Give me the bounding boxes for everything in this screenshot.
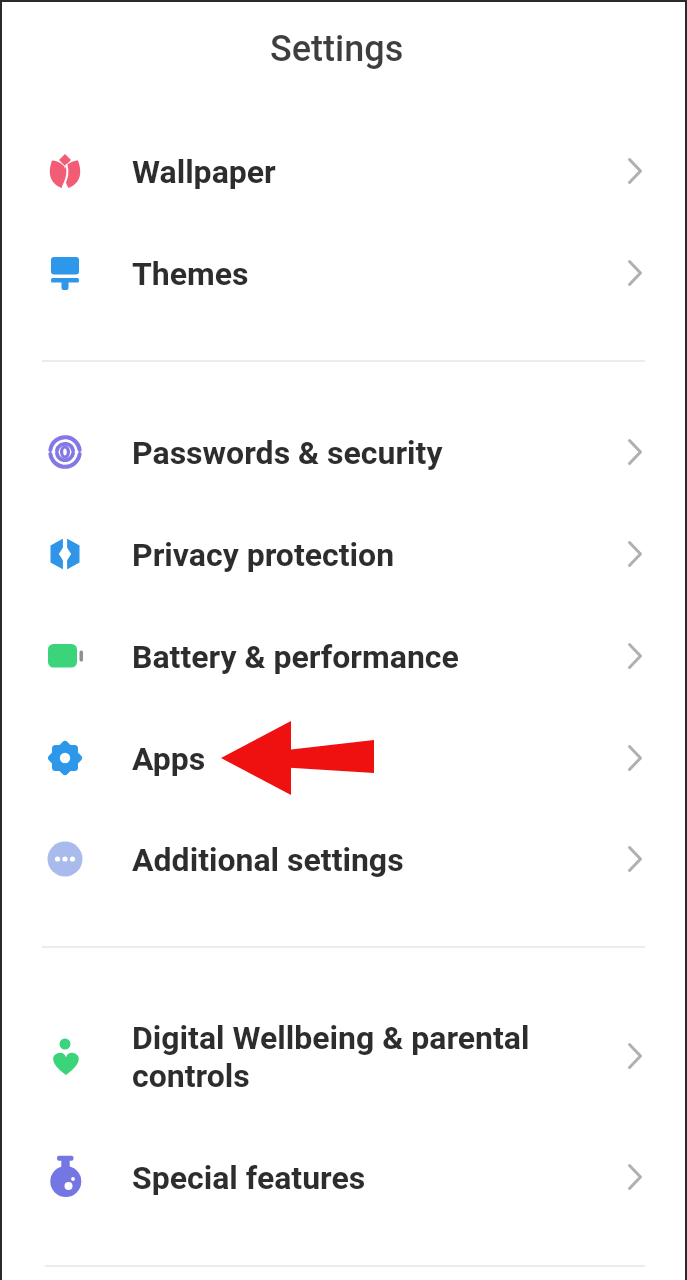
staticText: Special features <box>132 1159 366 1197</box>
button[interactable]: Themes <box>0 222 687 324</box>
button[interactable]: Apps <box>0 707 687 809</box>
button[interactable]: Additional settings <box>0 808 687 910</box>
button[interactable]: Wallpaper <box>0 120 687 222</box>
staticText: Digital Wellbeing & parental <box>132 1019 530 1057</box>
button[interactable]: Passwords & security <box>0 401 687 503</box>
staticText: Battery & performance <box>132 638 459 676</box>
staticText: Settings <box>270 28 404 70</box>
staticText: Passwords & security <box>132 434 443 472</box>
staticText: controls <box>132 1057 250 1095</box>
staticText: Additional settings <box>132 841 404 879</box>
button[interactable]: Privacy protection <box>0 503 687 605</box>
staticText: Themes <box>132 255 249 293</box>
button[interactable]: Battery & performance <box>0 605 687 707</box>
button[interactable]: Digital Wellbeing & parental <box>0 986 687 1126</box>
staticText: Apps <box>132 740 206 778</box>
staticText: Wallpaper <box>132 153 276 191</box>
button[interactable]: Special features <box>0 1126 687 1228</box>
staticText: Privacy protection <box>132 536 395 574</box>
